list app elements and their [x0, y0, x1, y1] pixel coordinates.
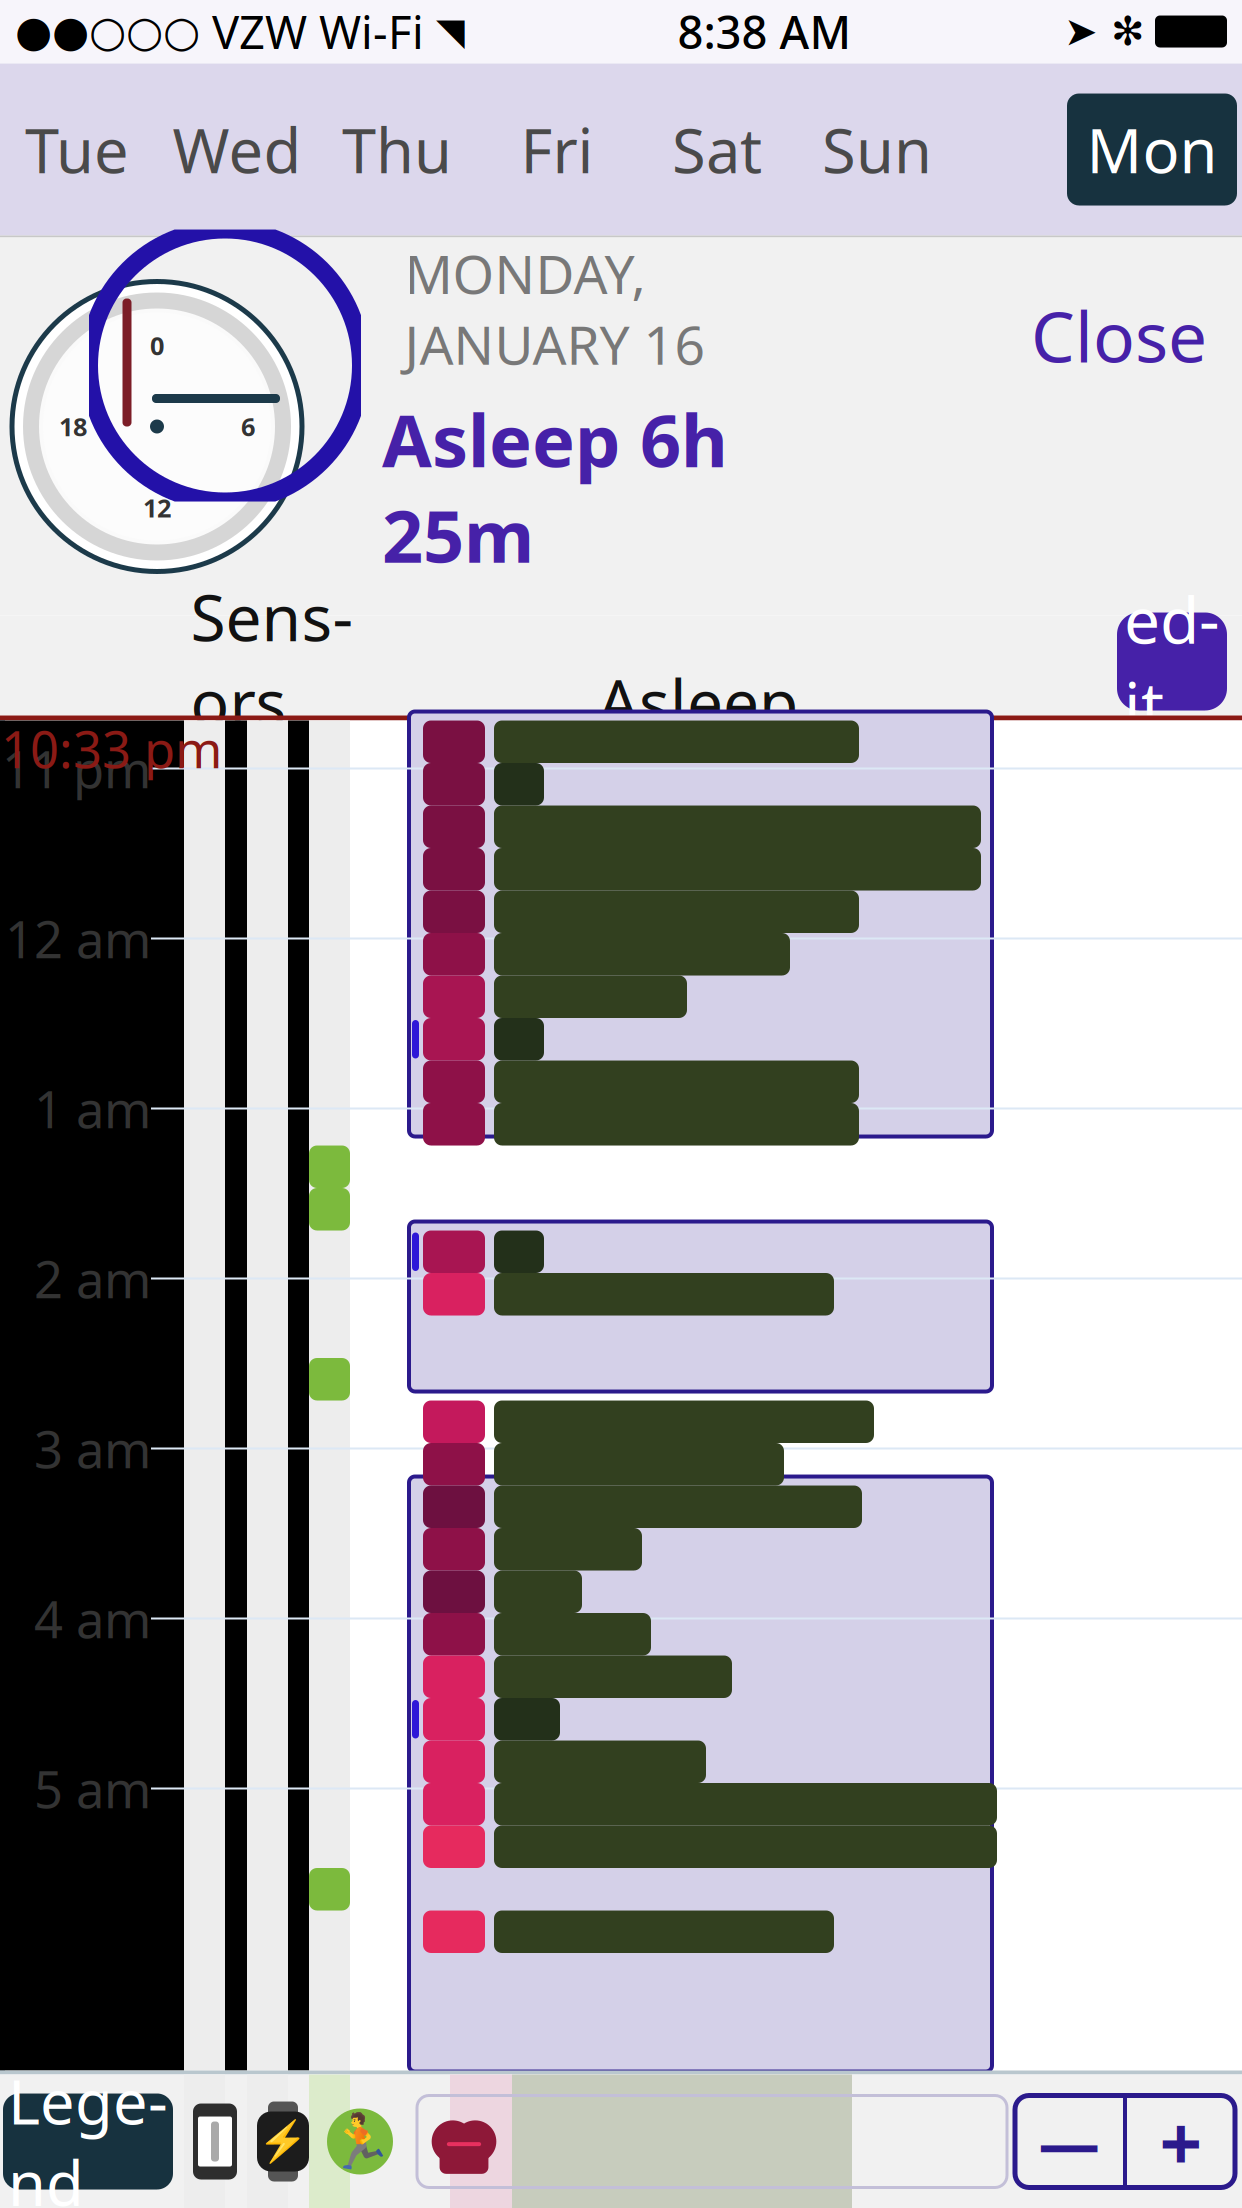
staticText: 12	[143, 491, 171, 524]
button[interactable]: Legend	[3, 2093, 173, 2189]
button[interactable]: Heart rate	[417, 2095, 1007, 2187]
staticText: 2 am	[34, 1245, 151, 1312]
staticText: Legend	[8, 2060, 168, 2208]
staticText: Wed	[172, 109, 301, 190]
staticText: ⚡	[258, 2119, 308, 2164]
button[interactable]: Thu	[317, 93, 477, 205]
staticText: ●●○○○	[15, 7, 200, 56]
staticText: —	[1038, 2101, 1099, 2182]
staticText: 0	[150, 328, 164, 362]
button[interactable]: Mon	[1067, 93, 1237, 205]
staticText: 11 pm	[2, 735, 151, 802]
staticText: ◥	[436, 10, 465, 53]
button[interactable]: Zoom in	[1127, 2095, 1235, 2187]
staticText: 10:33 pm	[1, 715, 222, 782]
staticText: 18	[59, 410, 87, 443]
button[interactable]: Wed	[157, 93, 317, 205]
button[interactable]: Tue	[0, 93, 157, 205]
staticText: 3 am	[34, 1415, 151, 1482]
staticText: 5 am	[34, 1755, 151, 1822]
button[interactable]: Sun	[797, 93, 957, 205]
staticText: Asleep	[598, 659, 798, 744]
staticText: Fri	[520, 109, 593, 190]
staticText: Sat	[672, 109, 762, 190]
staticText: Close	[1031, 289, 1207, 382]
button[interactable]: iPhone sensor	[193, 2103, 237, 2179]
staticText: 🏃	[327, 2111, 393, 2172]
staticText: Thu	[342, 109, 452, 190]
staticText: VZW Wi-Fi	[200, 1, 436, 62]
staticText: Asleep 6h 25m	[382, 391, 728, 583]
staticText: edit	[1124, 576, 1220, 746]
staticText: +	[1159, 2092, 1202, 2191]
button[interactable]: Apple Watch sensor	[255, 2100, 311, 2182]
staticText: 8:38 AM	[677, 1, 851, 62]
staticText: 4 am	[34, 1585, 151, 1652]
staticText: Sun	[822, 109, 932, 190]
staticText: Tue	[25, 109, 129, 190]
button[interactable]: Activity	[325, 2106, 395, 2176]
staticText: 1 am	[34, 1075, 151, 1142]
staticText: 5%	[538, 597, 631, 685]
button[interactable]: Fri	[477, 93, 637, 205]
staticText: 6	[241, 410, 255, 443]
staticText: 12 am	[5, 905, 151, 972]
button[interactable]: Close	[1007, 279, 1231, 392]
button[interactable]: Sat	[637, 93, 797, 205]
staticText: Mon	[1086, 109, 1217, 190]
staticText: Sensors	[190, 574, 353, 744]
staticText: MONDAY, JANUARY 16	[404, 238, 705, 379]
button[interactable]: Zoom out	[1015, 2095, 1123, 2187]
staticText: ➤ ✻	[1064, 9, 1145, 54]
button[interactable]: edit	[1117, 612, 1227, 710]
